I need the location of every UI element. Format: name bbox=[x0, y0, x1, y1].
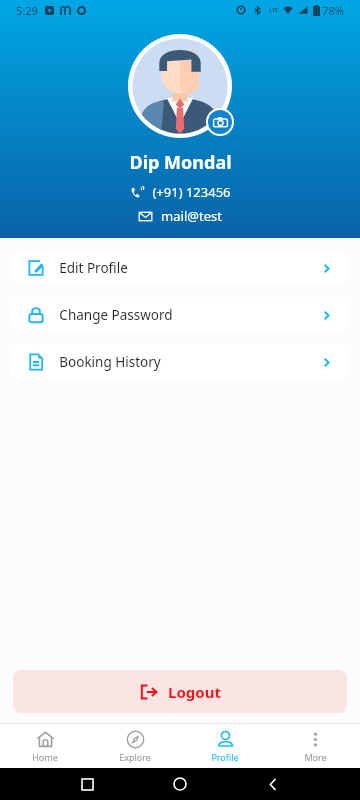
button[interactable]: Home bbox=[174, 778, 186, 790]
staticText: LTE bbox=[269, 7, 278, 14]
staticText: Dip Mondal bbox=[129, 150, 232, 175]
staticText: mail@test bbox=[161, 207, 222, 225]
button[interactable]: Logout bbox=[13, 670, 347, 713]
staticText: (+91) 123456 bbox=[152, 183, 231, 201]
button[interactable]: Recents bbox=[82, 779, 93, 790]
staticText: Profile bbox=[211, 751, 239, 763]
staticText: 5:29 bbox=[16, 3, 38, 18]
staticText: Change Password bbox=[59, 306, 173, 324]
button[interactable]: Change Password bbox=[13, 297, 347, 333]
button[interactable]: Change photo bbox=[208, 110, 232, 134]
button[interactable]: Back bbox=[268, 779, 279, 790]
button[interactable]: Edit Profile bbox=[13, 250, 347, 286]
button[interactable]: More bbox=[270, 724, 360, 768]
button[interactable]: Booking History bbox=[13, 344, 347, 380]
button[interactable]: Home bbox=[0, 724, 90, 768]
staticText: Logout bbox=[168, 682, 221, 702]
staticText: 78% bbox=[322, 3, 344, 18]
button[interactable]: Profile photo bbox=[128, 34, 232, 138]
staticText: Booking History bbox=[59, 353, 161, 371]
staticText: Home bbox=[32, 751, 58, 763]
button[interactable]: Profile bbox=[180, 724, 270, 768]
staticText: Edit Profile bbox=[59, 259, 128, 277]
staticText: More bbox=[304, 751, 327, 763]
button[interactable]: Explore bbox=[90, 724, 180, 768]
staticText: Explore bbox=[119, 751, 151, 763]
